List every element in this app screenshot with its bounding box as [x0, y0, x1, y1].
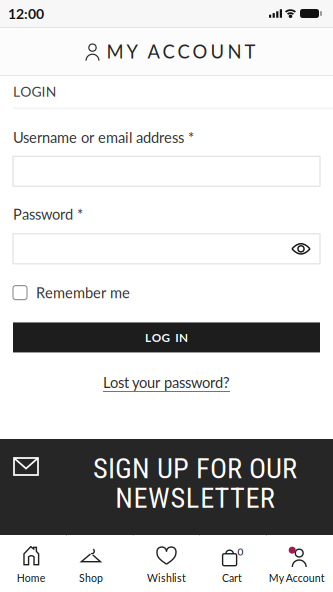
staticText: LOGIN	[13, 83, 57, 100]
staticText: Remember me	[36, 284, 130, 301]
button[interactable]: 0	[200, 535, 266, 592]
button[interactable]: Shop	[67, 535, 133, 592]
staticText: 0	[238, 546, 244, 558]
staticText: Password *	[13, 205, 83, 223]
staticText: 12:00	[8, 5, 44, 22]
staticText: My Account	[269, 572, 325, 584]
button[interactable]: LOG IN	[13, 322, 320, 352]
staticText: MY ACCOUNT	[106, 40, 255, 63]
staticText: NEWSLETTER	[115, 481, 275, 515]
staticText: Cart	[222, 572, 242, 584]
button[interactable]: SIGN UP FOR OUR	[0, 439, 333, 536]
button[interactable]: Show password	[292, 243, 310, 255]
button[interactable]: My Account	[266, 535, 333, 592]
button[interactable]: Wishlist	[133, 535, 200, 592]
staticText: SIGN UP FOR OUR	[93, 452, 297, 485]
staticText: Wishlist	[147, 572, 186, 584]
staticText: Username or email address *	[13, 129, 194, 146]
staticText: Home	[17, 572, 46, 584]
button[interactable]: Lost your password?	[103, 373, 230, 391]
staticText: Shop	[79, 572, 103, 584]
staticText: LOG IN	[145, 330, 188, 344]
button[interactable]: Home	[0, 535, 67, 592]
button[interactable]: Remember me	[13, 284, 130, 301]
staticText: Lost your password?	[103, 373, 230, 391]
